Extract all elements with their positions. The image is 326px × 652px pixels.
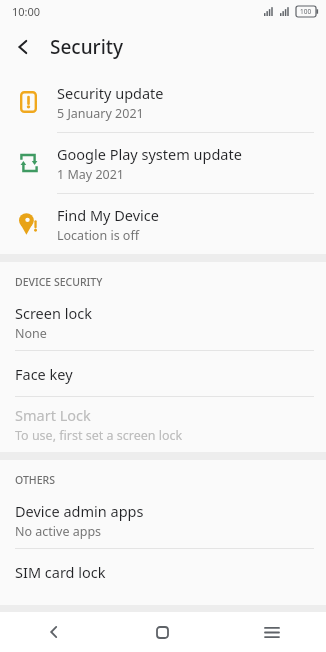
button[interactable]: Back [0, 612, 108, 652]
staticText: None [15, 325, 47, 342]
staticText: Face key [15, 364, 73, 384]
button[interactable]: Find My Device [0, 194, 326, 254]
staticText: OTHERS [15, 473, 55, 487]
staticText: Smart Lock [15, 405, 91, 425]
staticText: Device admin apps [15, 501, 144, 521]
button[interactable]: Screen lock [0, 295, 326, 350]
staticText: Security [50, 34, 124, 60]
button[interactable]: Home [108, 612, 217, 652]
staticText: DEVICE SECURITY [15, 275, 103, 289]
button[interactable]: Face key [0, 351, 326, 396]
staticText: Security update [57, 83, 164, 103]
staticText: 5 January 2021 [57, 105, 144, 122]
staticText: 100 [300, 7, 312, 16]
staticText: 10:00 [12, 4, 41, 19]
staticText: No active apps [15, 523, 102, 540]
button[interactable]: SIM card lock [0, 549, 326, 594]
button[interactable]: Google Play system update [0, 133, 326, 193]
staticText: Screen lock [15, 303, 92, 323]
button[interactable]: Security update [0, 72, 326, 132]
button[interactable]: Recent apps [217, 612, 326, 652]
staticText: Location is off [57, 227, 140, 244]
button[interactable]: Smart Lock [0, 397, 326, 452]
staticText: Google Play system update [57, 144, 242, 164]
button[interactable]: Back [0, 24, 46, 70]
staticText: To use, first set a screen lock [15, 427, 183, 444]
staticText: Find My Device [57, 205, 159, 225]
staticText: 1 May 2021 [57, 166, 124, 183]
staticText: SIM card lock [15, 562, 106, 582]
button[interactable]: Device admin apps [0, 493, 326, 548]
